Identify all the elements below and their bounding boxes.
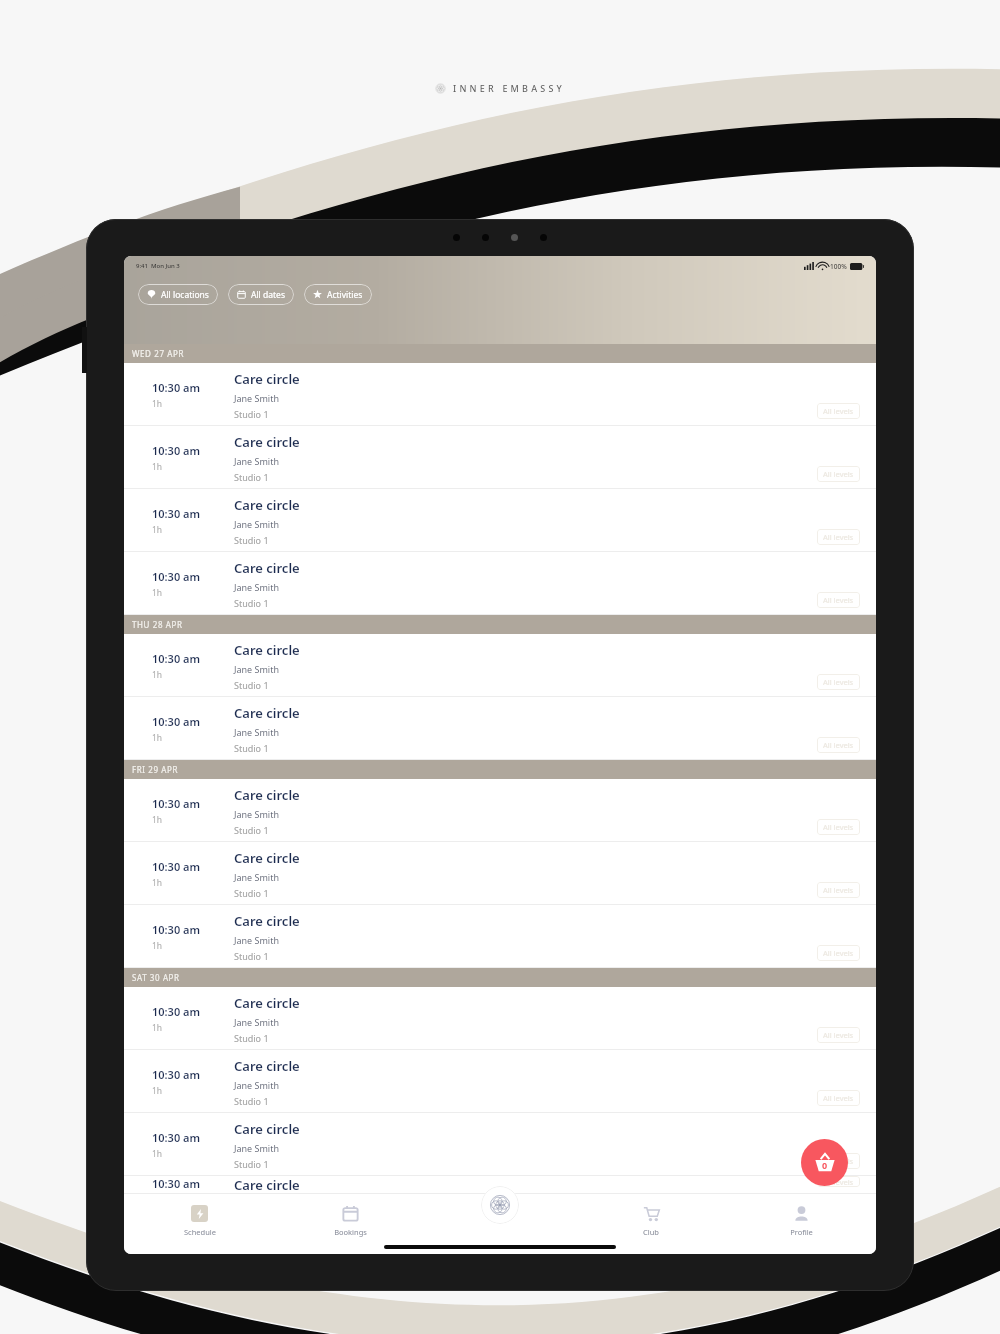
staticText: 1h: [152, 940, 163, 952]
staticText: Studio 1: [234, 1158, 269, 1170]
staticText: 1h: [152, 587, 163, 599]
staticText: All levels: [823, 1177, 854, 1187]
staticText: Jane Smith: [234, 871, 279, 883]
button[interactable]: All locations: [138, 284, 218, 305]
staticText: 10:30 am: [152, 569, 201, 584]
staticText: 1h: [152, 1085, 163, 1097]
staticText: Jane Smith: [234, 1142, 279, 1154]
button[interactable]: Club: [576, 1194, 726, 1254]
staticText: 10:30 am: [152, 859, 201, 874]
staticText: Jane Smith: [234, 392, 279, 404]
button[interactable]: 10:30 am: [124, 987, 876, 1050]
staticText: 10:30 am: [152, 506, 201, 521]
button[interactable]: 10:30 am: [124, 1050, 876, 1113]
staticText: All dates: [251, 289, 285, 301]
button[interactable]: Cart, 0 items: [801, 1139, 848, 1186]
staticText: Jane Smith: [234, 663, 279, 675]
staticText: Care circle: [234, 370, 300, 388]
staticText: Studio 1: [234, 679, 269, 691]
button[interactable]: Schedule: [124, 1194, 275, 1254]
staticText: Care circle: [234, 559, 300, 577]
staticText: 10:30 am: [152, 714, 201, 729]
staticText: Jane Smith: [234, 726, 279, 738]
staticText: 1h: [152, 1148, 163, 1160]
button[interactable]: Profile: [726, 1194, 876, 1254]
button[interactable]: 10:30 am: [124, 1113, 876, 1176]
staticText: 10:30 am: [152, 1004, 201, 1019]
staticText: All locations: [161, 289, 209, 301]
staticText: Jane Smith: [234, 518, 279, 530]
staticText: Care circle: [234, 496, 300, 514]
button[interactable]: Activities: [304, 284, 372, 305]
staticText: Jane Smith: [234, 934, 279, 946]
staticText: Care circle: [234, 912, 300, 930]
staticText: 1h: [152, 877, 163, 889]
button[interactable]: 10:30 am: [124, 905, 876, 968]
staticText: Studio 1: [234, 887, 269, 899]
staticText: 1h: [152, 461, 163, 473]
staticText: 10:30 am: [152, 651, 201, 666]
staticText: Jane Smith: [234, 455, 279, 467]
button[interactable]: 10:30 am: [124, 779, 876, 842]
staticText: All levels: [823, 1156, 854, 1166]
button[interactable]: 10:30 am: [124, 426, 876, 489]
staticText: Care circle: [234, 1057, 300, 1075]
staticText: 1h: [152, 732, 163, 744]
button[interactable]: 10:30 am: [124, 697, 876, 760]
staticText: Care circle: [234, 1176, 300, 1194]
button[interactable]: Home: [481, 1186, 519, 1224]
staticText: 1h: [152, 669, 163, 681]
staticText: THU 28 APR: [132, 619, 183, 630]
staticText: All levels: [823, 677, 854, 687]
button[interactable]: Bookings: [275, 1194, 426, 1254]
staticText: All levels: [823, 885, 854, 895]
staticText: Jane Smith: [234, 1079, 279, 1091]
button[interactable]: 10:30 am: [124, 552, 876, 615]
staticText: Studio 1: [234, 471, 269, 483]
staticText: All levels: [823, 532, 854, 542]
staticText: Activities: [327, 289, 363, 301]
staticText: Studio 1: [234, 408, 269, 420]
staticText: 1h: [152, 1022, 163, 1034]
staticText: Care circle: [234, 641, 300, 659]
button[interactable]: 10:30 am: [124, 634, 876, 697]
staticText: All levels: [823, 822, 854, 832]
staticText: Jane Smith: [234, 581, 279, 593]
staticText: Care circle: [234, 786, 300, 804]
staticText: 10:30 am: [152, 443, 201, 458]
staticText: All levels: [823, 948, 854, 958]
staticText: Care circle: [234, 994, 300, 1012]
staticText: Club: [643, 1227, 659, 1237]
button[interactable]: 10:30 am: [124, 363, 876, 426]
staticText: Studio 1: [234, 1095, 269, 1107]
button[interactable]: 10:30 am: [124, 1176, 876, 1194]
staticText: Schedule: [184, 1227, 216, 1237]
staticText: Studio 1: [234, 534, 269, 546]
staticText: SAT 30 APR: [132, 972, 180, 983]
staticText: 10:30 am: [152, 1130, 201, 1145]
staticText: Jane Smith: [234, 808, 279, 820]
staticText: Care circle: [234, 704, 300, 722]
staticText: Jane Smith: [234, 1016, 279, 1028]
button[interactable]: All dates: [228, 284, 294, 305]
staticText: Profile: [790, 1227, 813, 1237]
button[interactable]: 10:30 am: [124, 489, 876, 552]
staticText: FRI 29 APR: [132, 764, 179, 775]
staticText: Studio 1: [234, 824, 269, 836]
staticText: Care circle: [234, 433, 300, 451]
staticText: 9:41 Mon Jun 3: [136, 262, 180, 270]
staticText: All levels: [823, 740, 854, 750]
staticText: 10:30 am: [152, 796, 201, 811]
staticText: Care circle: [234, 849, 300, 867]
staticText: Studio 1: [234, 597, 269, 609]
staticText: Studio 1: [234, 950, 269, 962]
staticText: 10:30 am: [152, 380, 201, 395]
staticText: Care circle: [234, 1120, 300, 1138]
staticText: WED 27 APR: [132, 348, 184, 359]
staticText: 0: [822, 1159, 828, 1171]
staticText: 10:30 am: [152, 1176, 201, 1191]
staticText: 1h: [152, 398, 163, 410]
staticText: 10:30 am: [152, 1067, 201, 1082]
button[interactable]: 10:30 am: [124, 842, 876, 905]
staticText: 1h: [152, 814, 163, 826]
